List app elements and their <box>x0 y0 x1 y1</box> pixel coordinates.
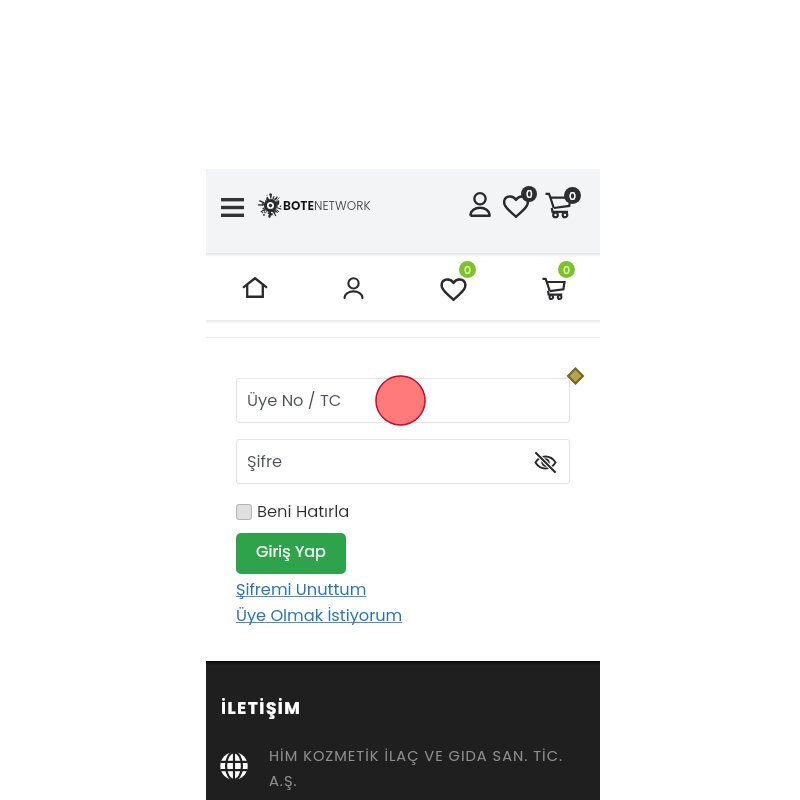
button[interactable]: Favorites <box>402 253 501 316</box>
button[interactable]: Account <box>304 253 402 316</box>
staticText: 0 <box>526 187 533 202</box>
button[interactable]: Beni Hatırla <box>236 500 350 523</box>
button[interactable]: Şifre <box>236 439 570 484</box>
staticText: Giriş Yap <box>256 540 326 562</box>
staticText: Üye Olmak İstiyorum <box>236 604 403 627</box>
button[interactable]: Menu <box>219 194 245 220</box>
button[interactable]: Cart <box>543 186 579 222</box>
button[interactable]: BOTE <box>258 194 371 217</box>
button[interactable]: Favorites <box>501 186 537 222</box>
staticText: Üye No / TC <box>247 389 342 412</box>
staticText: NETWORK <box>314 197 371 214</box>
staticText: HİM KOZMETİK İLAÇ VE GIDA SAN. TİC. A.Ş. <box>269 746 589 791</box>
button[interactable]: Şifremi Unuttum <box>236 578 367 601</box>
staticText: Şifremi Unuttum <box>236 578 367 601</box>
staticText: Şifre <box>247 450 283 473</box>
button[interactable]: Account <box>465 189 495 219</box>
staticText: BOTE <box>283 197 314 214</box>
staticText: 0 <box>569 188 577 203</box>
button[interactable]: Home <box>206 253 304 316</box>
button[interactable]: Cart <box>501 253 600 316</box>
button[interactable]: Üye No / TC <box>236 378 570 423</box>
staticText: 0 <box>563 262 571 277</box>
staticText: 0 <box>464 262 472 277</box>
staticText: İLETİŞİM <box>221 696 302 720</box>
button[interactable]: Show password <box>532 449 558 475</box>
button[interactable]: Giriş Yap <box>236 533 346 574</box>
staticText: Beni Hatırla <box>257 500 350 523</box>
button[interactable]: Üye Olmak İstiyorum <box>236 604 403 627</box>
